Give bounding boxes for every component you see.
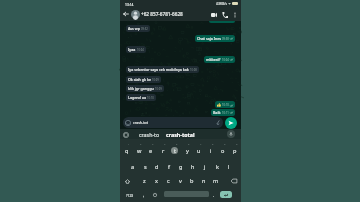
staticText: n [202, 177, 206, 185]
button[interactable]: 2 [133, 139, 145, 160]
staticText: b [190, 177, 194, 185]
staticText: f [168, 163, 170, 171]
button[interactable]: 3 [145, 139, 157, 160]
staticText: 10:04 [222, 58, 229, 62]
button[interactable]: 1 [120, 139, 133, 160]
staticText: 4 [164, 142, 166, 145]
button[interactable]: More options [231, 11, 238, 18]
button[interactable]: Keyboard settings [122, 131, 129, 138]
staticText: 10:09 [155, 87, 162, 91]
button[interactable]: 7 [193, 139, 205, 160]
button[interactable]: x [150, 174, 162, 188]
staticText: 7 [200, 142, 202, 145]
button[interactable]: Video call [209, 10, 218, 19]
button[interactable]: Lagend ua [128, 94, 154, 101]
staticText: , [143, 192, 145, 198]
staticText: g [179, 163, 183, 171]
button[interactable]: b [186, 174, 198, 188]
button[interactable]: l [223, 160, 235, 174]
button[interactable]: n [198, 174, 210, 188]
button[interactable]: 8 [205, 139, 217, 160]
button[interactable]: Ass wp [128, 25, 148, 32]
staticText: 6 [188, 142, 190, 145]
staticText: 10:09 [152, 78, 159, 82]
staticText: Ok siah gk ke [128, 77, 151, 82]
button[interactable]: k [211, 160, 223, 174]
button[interactable]: d [151, 160, 163, 174]
staticText: 10:11 [222, 111, 229, 115]
staticText: Chat saja Ines [197, 36, 221, 41]
staticText: . [213, 192, 215, 198]
staticText: z [143, 177, 146, 185]
staticText: Iyaa [128, 47, 136, 52]
staticText: j [204, 163, 206, 171]
button[interactable]: f [163, 160, 175, 174]
staticText: klik jgr ganggu [128, 86, 154, 91]
staticText: 09:58 [222, 37, 229, 41]
staticText: 2 [140, 142, 142, 145]
button[interactable]: 4 [157, 139, 169, 160]
button[interactable]: ?123 [120, 188, 139, 202]
button[interactable]: . [209, 188, 219, 202]
button[interactable]: 9 [217, 139, 229, 160]
staticText: r [162, 147, 165, 155]
button[interactable]: Emoji [149, 188, 160, 202]
button[interactable]: Call [220, 10, 229, 19]
button[interactable]: 0 [229, 139, 241, 160]
button[interactable]: Ok siah gk ke [128, 76, 159, 83]
staticText: 5 [176, 142, 178, 145]
staticText: a [131, 163, 135, 171]
staticText: crash-to [139, 131, 160, 138]
button[interactable]: Send [225, 117, 237, 129]
staticText: Lagend ua [128, 95, 146, 100]
staticText: k [216, 163, 219, 171]
button[interactable]: g [175, 160, 187, 174]
button[interactable]: a [127, 160, 139, 174]
staticText: y [186, 147, 189, 155]
button[interactable]: Chat saja Ines [197, 35, 233, 42]
staticText: h [191, 163, 195, 171]
staticText: p [233, 147, 237, 155]
staticText: 8 [212, 142, 214, 145]
button[interactable]: Enter [220, 191, 232, 198]
button[interactable]: 10:10 [217, 101, 233, 108]
staticText: 10:04 [137, 48, 144, 52]
staticText: Ass wp [128, 26, 140, 31]
staticText: v [179, 177, 182, 185]
staticText: 4.9KB/s [216, 2, 227, 6]
staticText: 3 [152, 142, 154, 145]
staticText: 1 [128, 142, 130, 145]
staticText: crash-tot [133, 120, 149, 125]
button[interactable]: Iya sebentar saya cek mobilnya kak [128, 66, 197, 73]
staticText: 09:52 [141, 27, 148, 31]
button[interactable]: Back [122, 10, 130, 18]
staticText: x [155, 177, 158, 185]
staticText: 10:10 [147, 96, 154, 100]
button[interactable]: h [187, 160, 199, 174]
staticText: q [125, 147, 129, 155]
button[interactable]: Voice input [227, 130, 235, 138]
button[interactable]: crash-tot [125, 117, 221, 128]
button[interactable]: s [139, 160, 151, 174]
button[interactable]: Shift [120, 174, 134, 188]
button[interactable]: Backspace [226, 174, 241, 188]
button[interactable]: j [199, 160, 211, 174]
staticText: 9 [224, 142, 226, 145]
button[interactable]: 6 [181, 139, 193, 160]
staticText: mkbest? [206, 57, 221, 62]
button[interactable]: 5 [169, 139, 181, 160]
button[interactable]: klik jgr ganggu [128, 85, 162, 92]
button[interactable]: z [138, 174, 150, 188]
button[interactable]: m [210, 174, 222, 188]
button[interactable]: , [139, 188, 149, 202]
button[interactable]: c [162, 174, 174, 188]
staticText: +62 857-6781-6628 [141, 11, 183, 17]
button[interactable]: Iyaa [128, 46, 144, 53]
button[interactable]: v [174, 174, 186, 188]
button[interactable]: mkbest? [206, 56, 233, 63]
button[interactable]: Baik [213, 109, 233, 116]
staticText: w [137, 147, 142, 155]
staticText: 13:14 [125, 2, 134, 6]
staticText: i [210, 147, 212, 155]
